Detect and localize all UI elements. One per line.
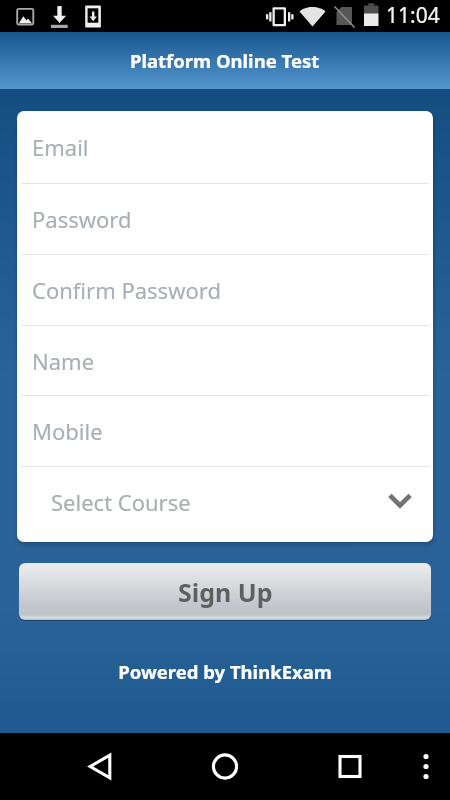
button[interactable]: Mobile bbox=[17, 396, 433, 466]
staticText: Password bbox=[32, 204, 132, 234]
staticText: Email bbox=[32, 132, 89, 162]
button[interactable]: Sign Up bbox=[19, 563, 431, 620]
button[interactable]: Confirm Password bbox=[17, 255, 433, 325]
staticText: Platform Online Test bbox=[130, 48, 320, 73]
staticText: Powered by ThinkExam bbox=[0, 659, 450, 684]
button[interactable]: Password bbox=[17, 184, 433, 254]
button[interactable]: Name bbox=[17, 326, 433, 395]
staticText: Mobile bbox=[32, 416, 103, 446]
staticText: Sign Up bbox=[178, 575, 273, 609]
staticText: Select Course bbox=[51, 487, 191, 517]
button[interactable]: Select Course bbox=[17, 467, 433, 542]
button[interactable]: Back bbox=[62, 733, 138, 800]
staticText: Name bbox=[32, 346, 95, 376]
staticText: Confirm Password bbox=[32, 275, 221, 305]
button[interactable]: Home bbox=[187, 733, 263, 800]
button[interactable]: Email bbox=[17, 111, 433, 183]
button[interactable]: Recent apps bbox=[312, 733, 388, 800]
staticText: 11:04 bbox=[386, 1, 440, 30]
button[interactable]: More options bbox=[402, 733, 450, 800]
